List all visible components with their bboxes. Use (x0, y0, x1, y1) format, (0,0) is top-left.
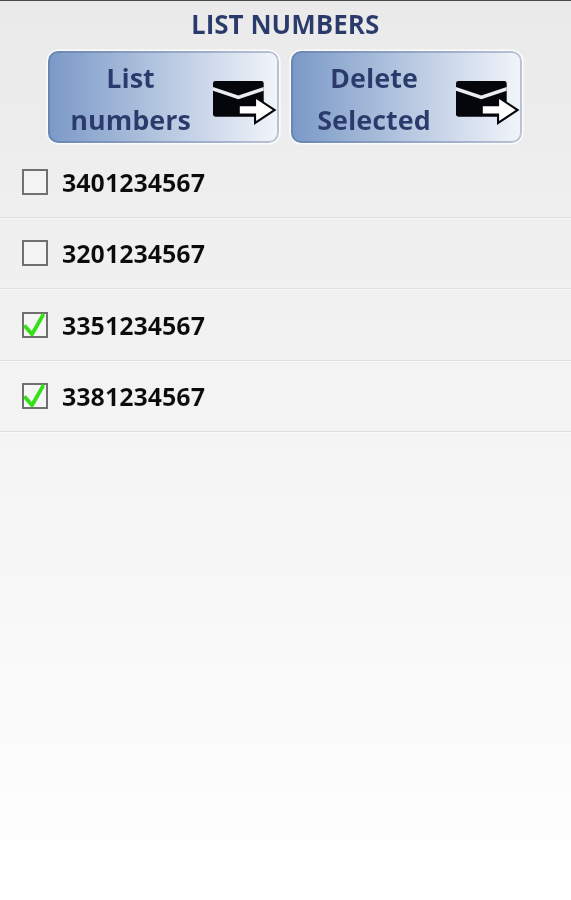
staticText: Delete Selected (317, 59, 431, 138)
other: Send SMS (456, 81, 518, 125)
staticText: List numbers (70, 59, 191, 138)
staticText: LIST NUMBERS (191, 6, 380, 41)
button[interactable]: 3351234567 (0, 289, 571, 360)
button[interactable]: 3401234567 (0, 146, 571, 217)
button[interactable]: 3381234567 (0, 360, 571, 431)
button[interactable]: List numbers (48, 51, 279, 143)
staticText: 3201234567 (62, 236, 205, 270)
staticText: 3401234567 (62, 165, 205, 199)
other: Send SMS (213, 81, 275, 125)
staticText: 3381234567 (62, 379, 205, 413)
button[interactable]: 3201234567 (0, 217, 571, 288)
staticText: 3351234567 (62, 308, 205, 342)
button[interactable]: Delete Selected (291, 51, 522, 143)
